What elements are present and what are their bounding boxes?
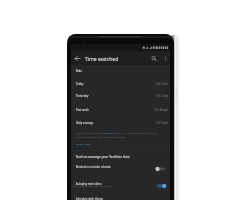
- button[interactable]: Past week: [71, 104, 170, 116]
- staticText: When you finish a video, another video a…: [71, 185, 112, 188]
- button[interactable]: Today: [71, 77, 170, 89]
- staticText: Yesterday: [76, 94, 89, 98]
- staticText: Time watched: [85, 55, 119, 62]
- staticText: Schedule dark theme: [76, 196, 103, 200]
- staticText: 7 hr 38 min: [154, 108, 168, 112]
- staticText: Tools to manage your YouTube time: [76, 154, 130, 159]
- button[interactable]: Yesterday: [71, 90, 170, 102]
- button[interactable]: Daily average: [71, 116, 170, 128]
- staticText: 4 hr 7 min: [156, 82, 168, 85]
- button[interactable]: Remind me to take a break: [71, 161, 170, 176]
- staticText: 1 hr 5 min: [156, 121, 168, 124]
- button[interactable]: Autoplay next video: [71, 178, 170, 193]
- staticText: LEARN MORE: [76, 142, 91, 145]
- staticText: Daily average: [76, 121, 93, 125]
- staticText: Data and insights in your watch history …: [76, 132, 159, 138]
- button[interactable]: Back: [72, 53, 82, 63]
- staticText: Stats: [76, 69, 82, 73]
- button[interactable]: Search: [149, 53, 159, 63]
- button[interactable]: More options: [161, 53, 170, 63]
- staticText: 3 hr 2 min: [156, 94, 168, 98]
- staticText: Today: [76, 82, 84, 86]
- staticText: Past week: [76, 108, 89, 112]
- staticText: Remind me to take a break: [76, 165, 111, 169]
- staticText: Autoplay next video: [76, 182, 102, 186]
